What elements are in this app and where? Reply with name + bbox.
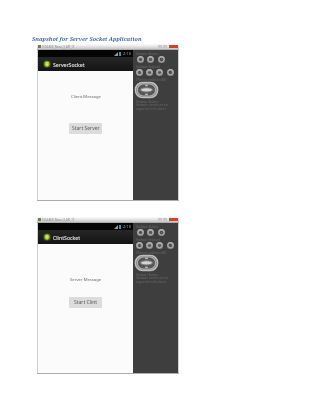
button[interactable]: Volume up: [147, 229, 154, 236]
button[interactable]: Menu: [146, 69, 153, 76]
button[interactable]: Volume up: [147, 56, 154, 63]
button[interactable]: Start Clint: [69, 297, 102, 308]
staticText: Hardware controls are not supported on t…: [136, 276, 181, 284]
button[interactable]: Volume down: [158, 56, 165, 63]
button[interactable]: Power: [137, 229, 144, 236]
staticText: Hardware Keyboard: [136, 65, 161, 69]
button[interactable]: Power: [137, 56, 144, 63]
button[interactable]: Search: [167, 69, 174, 76]
staticText: Hardware Buttons: [136, 273, 159, 277]
staticText: DPad not enabled in AVD: [136, 78, 167, 82]
staticText: Server Message: [70, 277, 102, 283]
staticText: 2:10: [123, 51, 131, 56]
staticText: Hardware Buttons: [136, 100, 159, 104]
button[interactable]: Search: [167, 242, 174, 249]
staticText: Hardware Buttons: [136, 52, 159, 56]
button[interactable]: Back: [156, 242, 163, 249]
button[interactable]: Start Server: [69, 123, 102, 134]
staticText: 5554:AVD_Nexus_S_API_17: [42, 218, 75, 222]
staticText: Start Server: [72, 125, 100, 132]
staticText: 2:10: [123, 224, 131, 229]
staticText: Start Clint: [74, 299, 98, 306]
button[interactable]: Menu: [146, 242, 153, 249]
staticText: DPad not enabled in AVD: [136, 251, 167, 255]
staticText: Hardware Keyboard: [136, 238, 161, 242]
button[interactable]: Home: [136, 242, 143, 249]
staticText: Snapshot for Server Socket Application: [32, 35, 142, 42]
staticText: Client Message: [71, 94, 101, 100]
button[interactable]: Home: [136, 69, 143, 76]
staticText: Hardware controls are not supported on t…: [136, 103, 181, 111]
staticText: 5554:AVD_Nexus_S_API_17: [42, 45, 75, 49]
button[interactable]: Back: [156, 69, 163, 76]
staticText: ServerSocket: [53, 61, 85, 68]
staticText: Hardware Buttons: [136, 225, 159, 229]
staticText: ClintSocket: [53, 234, 81, 241]
button[interactable]: Volume down: [158, 229, 165, 236]
